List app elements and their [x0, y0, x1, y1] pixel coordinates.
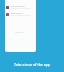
- staticText: Take a tour of the app: [14, 62, 50, 67]
- button[interactable]: [5, 4, 36, 11]
- button[interactable]: [5, 11, 36, 18]
